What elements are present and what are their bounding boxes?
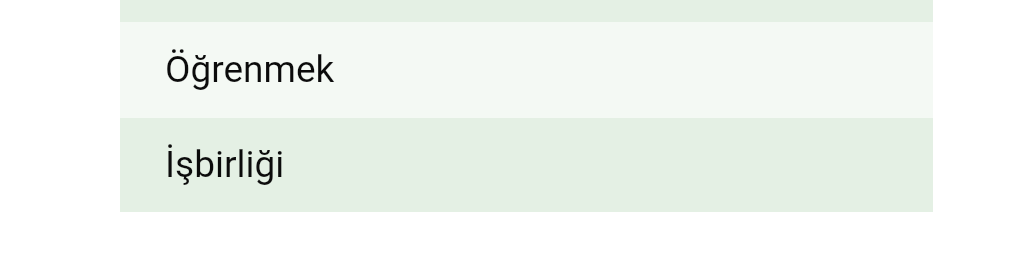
staticText: Öğrenmek [165, 48, 335, 91]
button[interactable]: Öğrenmek [120, 22, 933, 118]
staticText: İşbirliği [165, 143, 285, 186]
button[interactable]: İşbirliği [120, 118, 933, 212]
